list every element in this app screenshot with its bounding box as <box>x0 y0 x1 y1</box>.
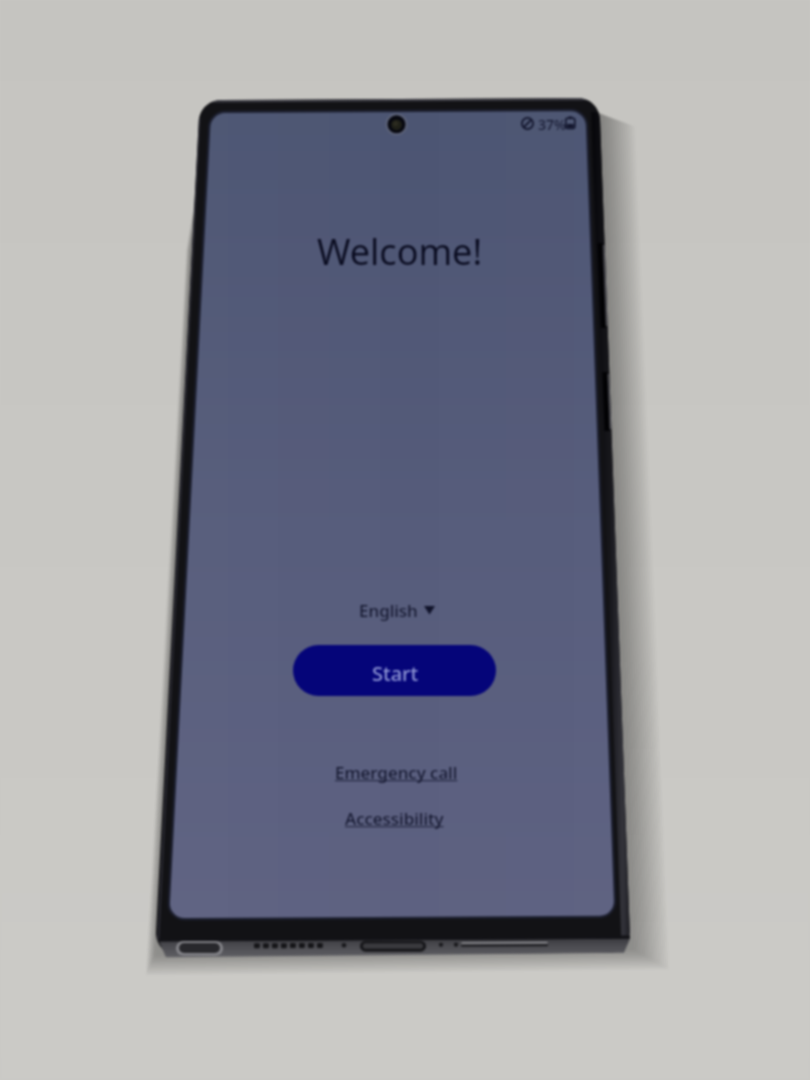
button[interactable]: Accessibility <box>345 807 444 830</box>
button[interactable] <box>352 594 442 622</box>
staticText: Emergency call <box>335 761 458 784</box>
staticText: Accessibility <box>345 807 444 830</box>
staticText: Welcome! <box>317 227 483 276</box>
button[interactable]: Emergency call <box>335 761 458 784</box>
staticText: English <box>359 599 418 622</box>
staticText: 37% <box>538 115 566 134</box>
staticText: Start <box>372 660 419 687</box>
button[interactable]: Start <box>293 645 496 696</box>
